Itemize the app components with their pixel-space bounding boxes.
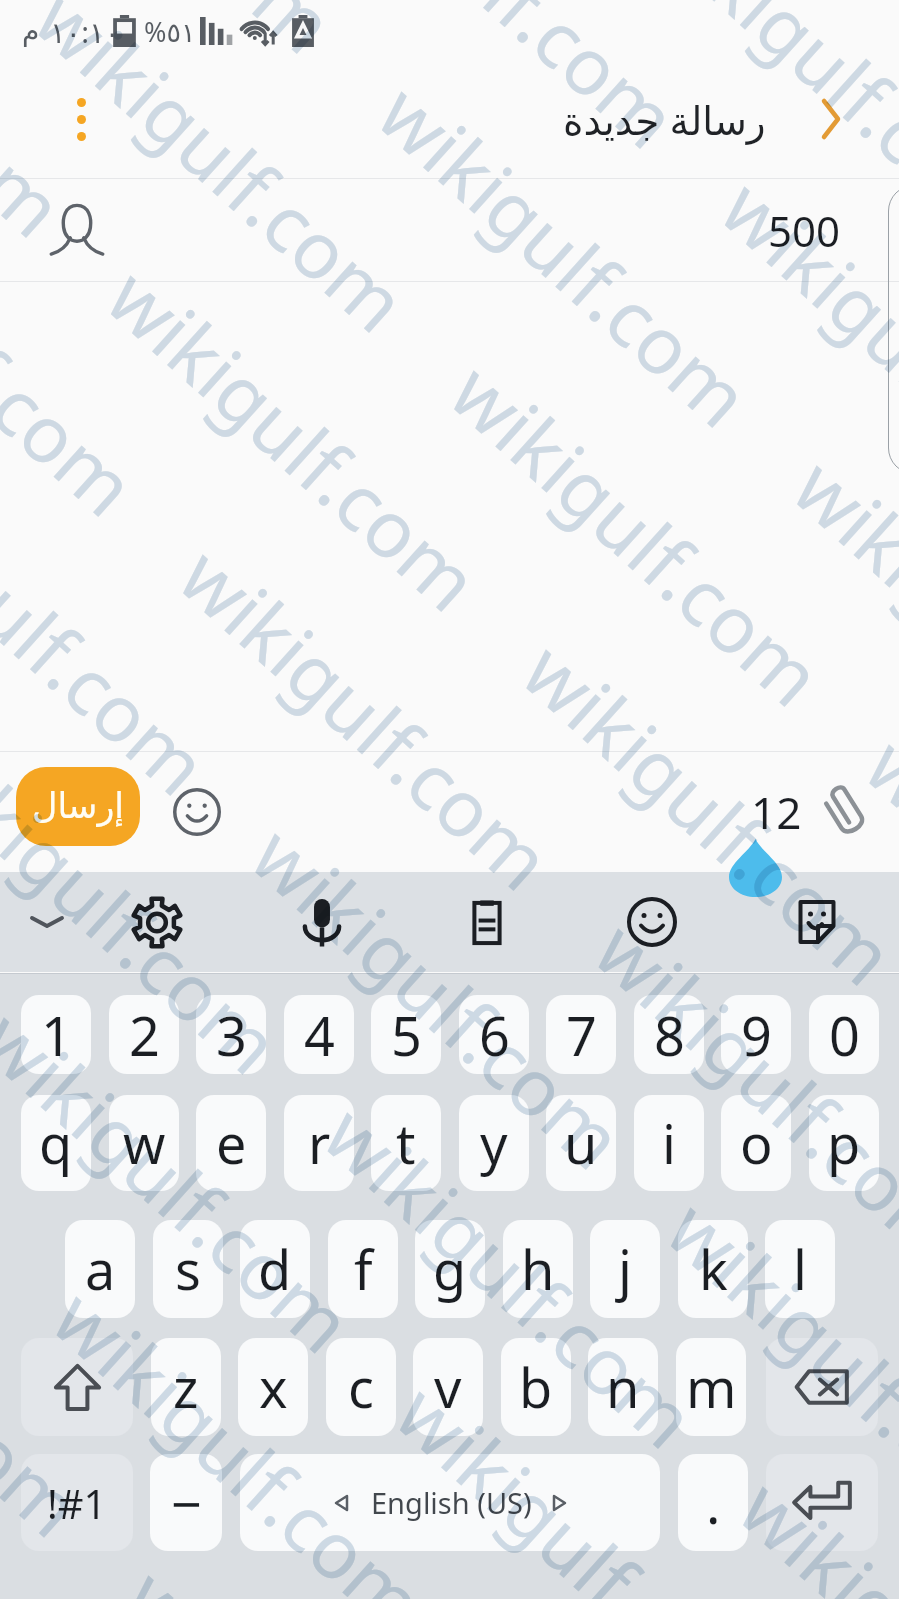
button[interactable]: 7 (546, 995, 616, 1074)
staticText: !#1 (47, 1476, 107, 1530)
button[interactable]: مسح (766, 1338, 878, 1436)
staticText: g (433, 1232, 467, 1306)
button[interactable]: b (501, 1338, 571, 1436)
button[interactable]: . (678, 1454, 748, 1551)
staticText: %٥١ (144, 13, 196, 50)
button[interactable]: الحافظة (445, 872, 529, 972)
staticText: x (259, 1350, 288, 1424)
button[interactable]: m (676, 1338, 746, 1436)
button[interactable]: المزيد (50, 88, 112, 150)
staticText: . (706, 1466, 721, 1540)
button[interactable]: shift (21, 1338, 133, 1436)
button[interactable]: 3 (196, 995, 266, 1074)
staticText: y (480, 1106, 508, 1180)
staticText: i (662, 1106, 676, 1180)
staticText: u (564, 1106, 598, 1180)
staticText: d (258, 1232, 292, 1306)
staticText: 4 (304, 998, 335, 1072)
button[interactable]: 4 (284, 995, 354, 1074)
staticText: t (396, 1106, 416, 1180)
button[interactable]: j (590, 1220, 660, 1318)
button[interactable]: إرفاق (810, 777, 878, 845)
staticText: k (699, 1232, 728, 1306)
button[interactable]: إرسال (16, 767, 140, 846)
staticText: 500 (768, 202, 841, 259)
button[interactable]: ميكروفون (280, 872, 364, 972)
staticText: z (173, 1350, 199, 1424)
button[interactable]: g (415, 1220, 485, 1318)
staticText: q (39, 1106, 73, 1180)
button[interactable]: t (371, 1095, 441, 1191)
staticText: r (308, 1106, 331, 1180)
button[interactable]: d (240, 1220, 310, 1318)
staticText: c (348, 1350, 374, 1424)
button[interactable]: 2 (109, 995, 179, 1074)
staticText: w (123, 1106, 166, 1180)
button[interactable]: c (326, 1338, 396, 1436)
staticText: 1 (41, 998, 72, 1072)
staticText: 6 (479, 998, 510, 1072)
staticText: 12 (751, 782, 802, 842)
staticText: − (171, 1466, 202, 1540)
button[interactable]: رجوع (800, 89, 860, 149)
button[interactable]: s (153, 1220, 223, 1318)
staticText: إرسال (32, 786, 125, 827)
button[interactable]: n (588, 1338, 658, 1436)
button[interactable]: k (678, 1220, 748, 1318)
staticText: l (793, 1232, 807, 1306)
button[interactable]: 0 (809, 995, 879, 1074)
button[interactable]: 5 (371, 995, 441, 1074)
button[interactable]: h (503, 1220, 573, 1318)
staticText: ١٠:١٠ (50, 12, 121, 51)
staticText: 2 (129, 998, 160, 1072)
button[interactable]: 1 (21, 995, 91, 1074)
button[interactable]: i (634, 1095, 704, 1191)
staticText: v (434, 1350, 462, 1424)
button[interactable]: r (284, 1095, 354, 1191)
button[interactable]: z (151, 1338, 221, 1436)
staticText: English (US) (371, 1483, 532, 1522)
staticText: b (519, 1350, 553, 1424)
staticText: 9 (741, 998, 772, 1072)
button[interactable]: f (328, 1220, 398, 1318)
button[interactable]: a (65, 1220, 135, 1318)
button[interactable]: o (721, 1095, 791, 1191)
button[interactable]: − (150, 1454, 222, 1551)
staticText: e (216, 1106, 247, 1180)
button[interactable]: p (809, 1095, 879, 1191)
button[interactable]: 6 (459, 995, 529, 1074)
button[interactable]: l (765, 1220, 835, 1318)
button[interactable]: 9 (721, 995, 791, 1074)
button[interactable]: رموز تعبيرية (163, 778, 231, 846)
staticText: 5 (391, 998, 422, 1072)
staticText: n (606, 1350, 640, 1424)
button[interactable]: x (238, 1338, 308, 1436)
staticText: o (740, 1106, 773, 1180)
button[interactable]: e (196, 1095, 266, 1191)
staticText: 8 (654, 998, 685, 1072)
button[interactable]: v (413, 1338, 483, 1436)
button[interactable]: !#1 (21, 1454, 133, 1551)
staticText: م (22, 14, 40, 47)
staticText: j (618, 1232, 632, 1306)
staticText: a (85, 1232, 116, 1306)
button[interactable]: English (US) (240, 1454, 660, 1551)
staticText: f (354, 1232, 373, 1306)
button[interactable]: إخفاء (5, 872, 89, 972)
button[interactable]: enter (766, 1454, 878, 1551)
button[interactable]: u (546, 1095, 616, 1191)
button[interactable]: إعدادات (115, 872, 199, 972)
button[interactable]: ملصقات (775, 872, 859, 972)
button[interactable]: رموز تعبيرية (610, 872, 694, 972)
button[interactable]: w (109, 1095, 179, 1191)
staticText: 0 (829, 998, 860, 1072)
staticText: p (827, 1106, 861, 1180)
staticText: 3 (216, 998, 247, 1072)
button[interactable]: y (459, 1095, 529, 1191)
staticText: رسالة جديدة (563, 93, 766, 146)
button[interactable]: 8 (634, 995, 704, 1074)
button[interactable]: جهات الاتصال (42, 195, 112, 265)
staticText: 7 (566, 998, 597, 1072)
staticText: h (521, 1232, 555, 1306)
button[interactable]: q (21, 1095, 91, 1191)
